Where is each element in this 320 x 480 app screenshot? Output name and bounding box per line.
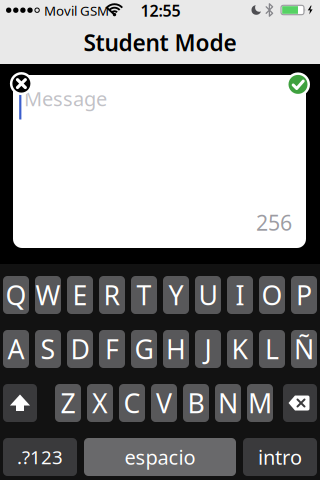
staticText: L [265, 331, 279, 367]
button[interactable]: A [3, 330, 29, 368]
button[interactable]: F [99, 330, 125, 368]
button[interactable]: Ñ [291, 330, 317, 368]
staticText: U [198, 277, 217, 313]
button[interactable]: Q [3, 276, 29, 314]
button[interactable]: D [67, 330, 93, 368]
staticText: B [187, 385, 204, 421]
button[interactable]: J [195, 330, 221, 368]
staticText: Q [5, 277, 26, 313]
button[interactable]: B [183, 384, 209, 422]
button[interactable] [286, 72, 310, 96]
button[interactable]: Y [163, 276, 189, 314]
button[interactable]: X [87, 384, 113, 422]
button[interactable]: W [35, 276, 61, 314]
button[interactable]: L [259, 330, 285, 368]
staticText: O [261, 277, 282, 313]
button[interactable]: .?123 [3, 438, 77, 476]
staticText: .?123 [17, 445, 63, 469]
staticText: X [92, 385, 108, 421]
button[interactable]: N [215, 384, 241, 422]
button[interactable]: espacio [84, 438, 236, 476]
staticText: Ñ [294, 331, 314, 367]
staticText: D [70, 331, 89, 367]
button[interactable]: U [195, 276, 221, 314]
staticText: M [248, 385, 272, 421]
staticText: T [136, 277, 151, 313]
staticText: intro [258, 444, 302, 470]
button[interactable]: K [227, 330, 253, 368]
staticText: K [231, 331, 248, 367]
staticText: C [123, 385, 140, 421]
staticText: I [235, 277, 244, 313]
button[interactable]: H [163, 330, 189, 368]
staticText: Message [24, 85, 107, 112]
button[interactable]: intro [243, 438, 317, 476]
staticText: N [218, 385, 238, 421]
button[interactable]: C [119, 384, 145, 422]
button[interactable]: E [67, 276, 93, 314]
staticText: F [105, 331, 119, 367]
button[interactable]: G [131, 330, 157, 368]
staticText: P [296, 277, 312, 313]
button[interactable]: V [151, 384, 177, 422]
button[interactable]: R [99, 276, 125, 314]
staticText: A [7, 331, 24, 367]
button[interactable]: S [35, 330, 61, 368]
button[interactable] [283, 384, 317, 422]
staticText: espacio [124, 444, 195, 470]
staticText: H [166, 331, 186, 367]
staticText: E [72, 277, 87, 313]
staticText: Z [60, 385, 75, 421]
staticText: Movil GSM [44, 2, 109, 19]
staticText: R [103, 277, 120, 313]
button[interactable]: Z [55, 384, 81, 422]
staticText: 256 [256, 208, 292, 237]
staticText: Y [168, 277, 183, 313]
button[interactable]: T [131, 276, 157, 314]
button[interactable] [3, 384, 37, 422]
button[interactable] [10, 72, 33, 95]
staticText: W [35, 277, 60, 313]
staticText: 12:55 [140, 0, 180, 21]
button[interactable]: I [227, 276, 253, 314]
staticText: Student Mode [83, 27, 236, 57]
button[interactable]: Message [13, 75, 306, 248]
button[interactable]: P [291, 276, 317, 314]
staticText: J [204, 331, 211, 367]
staticText: S [40, 331, 55, 367]
button[interactable]: M [247, 384, 273, 422]
staticText: G [134, 331, 153, 367]
button[interactable]: O [259, 276, 285, 314]
staticText: V [156, 385, 172, 421]
